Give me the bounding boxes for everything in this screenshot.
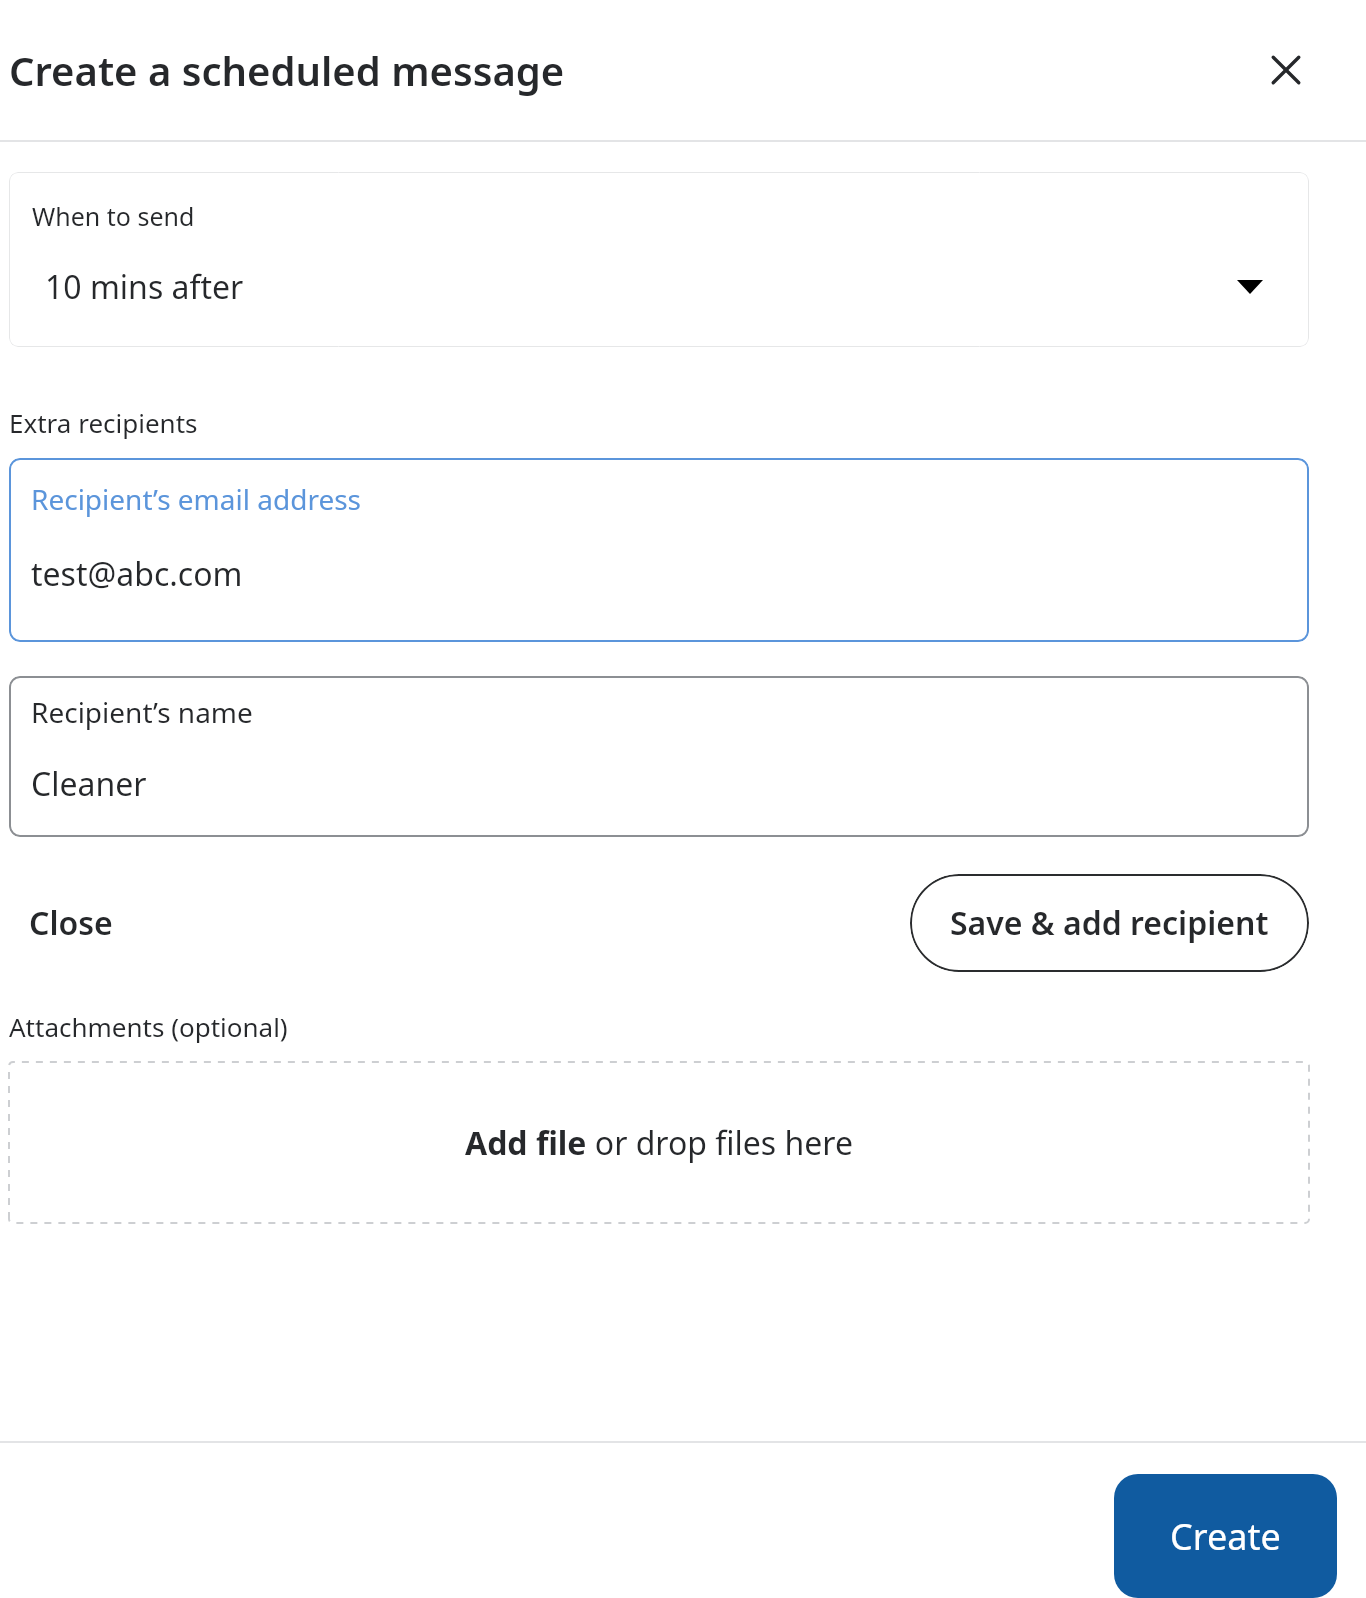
staticText: When to send <box>32 199 195 233</box>
button[interactable]: Create <box>1114 1474 1337 1598</box>
staticText: Attachments (optional) <box>9 1009 288 1044</box>
staticText: Create <box>1170 1512 1281 1561</box>
staticText: test@abc.com <box>31 552 243 596</box>
staticText: Recipient’s name <box>31 693 253 731</box>
staticText: Save & add recipient <box>950 901 1269 945</box>
button[interactable]: Recipient’s email address <box>9 458 1309 642</box>
staticText: Extra recipients <box>9 405 198 440</box>
staticText: 10 mins after <box>45 265 244 309</box>
staticText: Close <box>29 901 113 945</box>
button[interactable]: Save & add recipient <box>910 874 1309 972</box>
button[interactable]: Close <box>9 889 133 957</box>
staticText: Add file or drop files here <box>465 1121 853 1165</box>
button[interactable]: When to send <box>9 172 1309 347</box>
staticText: Cleaner <box>31 762 147 806</box>
button[interactable]: Recipient’s name <box>9 676 1309 837</box>
staticText: Create a scheduled message <box>9 43 565 97</box>
button[interactable]: Add file or drop files here <box>9 1062 1309 1223</box>
staticText: Recipient’s email address <box>31 480 362 518</box>
button[interactable]: Close dialog <box>1264 48 1308 92</box>
